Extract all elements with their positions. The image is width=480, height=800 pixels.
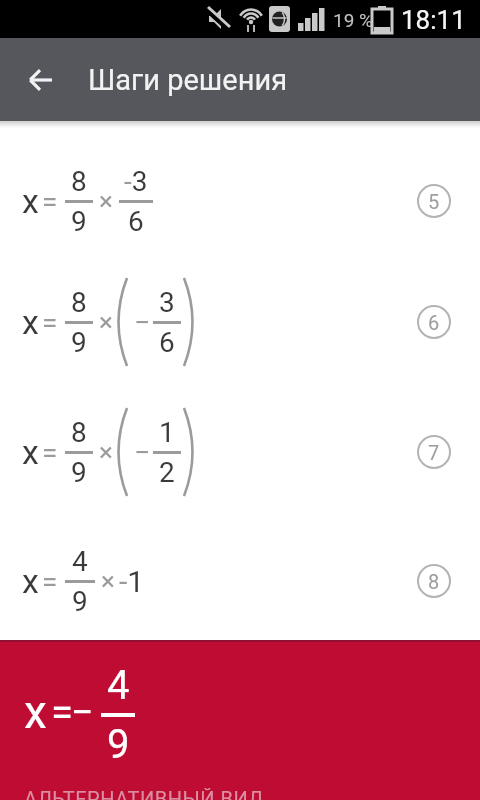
staticText: 9 xyxy=(71,205,87,238)
staticText: = xyxy=(42,565,58,598)
staticText: 3 xyxy=(159,286,175,319)
staticText: 18:11 xyxy=(401,5,466,35)
staticText: 6 xyxy=(428,311,440,334)
staticText: 8 xyxy=(428,570,440,593)
staticText: 19 % xyxy=(333,9,373,31)
staticText: 6 xyxy=(128,205,144,238)
staticText: 4 xyxy=(72,545,88,578)
staticText: x xyxy=(24,685,47,739)
staticText: − xyxy=(71,689,94,736)
staticText: -1 xyxy=(119,564,145,599)
button[interactable]: x xyxy=(22,404,451,500)
staticText: 9 xyxy=(71,456,87,489)
staticText: = xyxy=(51,689,73,736)
staticText: = xyxy=(42,436,58,469)
staticText: 5 xyxy=(428,190,440,213)
staticText: × xyxy=(101,566,115,596)
button[interactable]: 6 xyxy=(417,305,451,339)
staticText: 9 xyxy=(107,721,130,762)
staticText: 4 xyxy=(107,662,130,709)
staticText: АЛЬТЕРНАТИВНЫЙ ВИД xyxy=(24,787,264,800)
staticText: 8 xyxy=(71,286,87,319)
staticText: -3 xyxy=(124,165,148,198)
staticText: 6 xyxy=(159,326,175,359)
staticText: 7 xyxy=(428,441,440,464)
staticText: 9 xyxy=(71,326,87,359)
staticText: 9 xyxy=(72,585,88,618)
button[interactable]: 5 xyxy=(417,184,451,218)
staticText: 2 xyxy=(159,456,175,489)
staticText: 1 xyxy=(159,416,175,449)
button[interactable]: 8 xyxy=(417,564,451,598)
staticText: − xyxy=(134,306,151,339)
staticText: × xyxy=(99,437,113,467)
button[interactable]: 7 xyxy=(417,435,451,469)
button[interactable] xyxy=(28,67,54,93)
staticText: x xyxy=(22,302,39,342)
staticText: × xyxy=(99,186,113,216)
staticText: × xyxy=(99,307,113,337)
staticText: = xyxy=(42,185,58,218)
staticText: 8 xyxy=(71,165,87,198)
staticText: 8 xyxy=(71,416,87,449)
staticText: − xyxy=(134,436,151,469)
staticText: = xyxy=(42,306,58,339)
button[interactable]: x xyxy=(22,274,451,370)
button[interactable]: x xyxy=(22,164,451,238)
button[interactable]: x xyxy=(0,640,480,800)
button[interactable]: x xyxy=(22,543,451,619)
staticText: x xyxy=(22,561,39,601)
staticText: x xyxy=(22,432,39,472)
staticText: x xyxy=(22,181,39,221)
staticText: Шаги решения xyxy=(88,63,288,97)
